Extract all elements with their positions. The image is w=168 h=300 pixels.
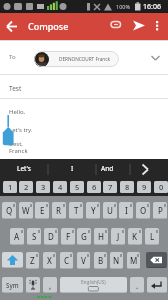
button[interactable]: L	[145, 228, 159, 245]
button[interactable]	[149, 14, 165, 36]
button[interactable]: H	[94, 228, 108, 245]
staticText: 100%	[116, 3, 131, 10]
button[interactable]: I	[48, 159, 96, 178]
staticText: 1	[8, 182, 13, 192]
staticText: DERNONCOURT Franck	[59, 56, 110, 62]
staticText: Sym	[6, 281, 19, 289]
staticText: 16:06	[143, 2, 161, 12]
staticText: L	[150, 231, 155, 242]
staticText: 4	[58, 182, 63, 192]
staticText: Test	[9, 84, 22, 93]
button[interactable]	[127, 14, 149, 36]
button[interactable]: A	[10, 228, 24, 245]
staticText: E	[40, 205, 45, 216]
staticText: Hello,	[9, 108, 26, 116]
button[interactable]: .	[130, 277, 144, 293]
button[interactable]: Z	[26, 252, 39, 269]
staticText: K	[132, 231, 138, 242]
staticText: And	[101, 164, 114, 173]
button[interactable]: E	[35, 202, 49, 219]
button[interactable]: 2	[19, 181, 33, 193]
staticText: I	[125, 205, 128, 216]
staticText: S	[32, 231, 37, 242]
button[interactable]: S	[27, 228, 41, 245]
button[interactable]: 8	[120, 181, 134, 193]
staticText: Y	[91, 205, 96, 216]
button[interactable]: 3	[36, 181, 50, 193]
button[interactable]: 0	[154, 181, 168, 193]
button[interactable]: Sym	[2, 277, 23, 293]
staticText: J	[117, 231, 120, 242]
button[interactable]	[146, 48, 166, 68]
button[interactable]: R	[52, 202, 66, 219]
staticText: .	[136, 280, 139, 291]
staticText: A	[14, 231, 20, 242]
button[interactable]: 1	[3, 181, 17, 193]
button[interactable]: W	[19, 202, 33, 219]
button[interactable]: K	[128, 228, 142, 245]
button[interactable]	[147, 277, 167, 293]
button[interactable]: D	[44, 228, 58, 245]
staticText: X	[47, 255, 52, 266]
staticText: 3	[41, 182, 46, 192]
staticText: 8	[125, 182, 130, 192]
button[interactable]: 7	[103, 181, 117, 193]
staticText: G	[81, 231, 87, 242]
staticText: Z	[30, 255, 35, 266]
staticText: 5	[75, 182, 80, 192]
staticText: I	[71, 164, 74, 173]
button[interactable]: Y	[86, 202, 100, 219]
staticText: O	[140, 205, 147, 216]
staticText: Let's try.	[9, 126, 33, 134]
button[interactable]: English(US)	[60, 277, 127, 293]
staticText: To	[9, 53, 16, 61]
staticText: B	[98, 255, 104, 266]
staticText: N	[113, 255, 120, 266]
button[interactable]: N	[110, 252, 123, 269]
staticText: 0	[159, 182, 164, 192]
staticText: M	[130, 255, 138, 266]
staticText: T	[74, 205, 79, 216]
button[interactable]: 5	[70, 181, 84, 193]
button[interactable]: I	[119, 202, 133, 219]
staticText: Q	[6, 205, 13, 216]
button[interactable]: J	[111, 228, 125, 245]
button[interactable]: 9	[137, 181, 151, 193]
button[interactable]: F	[61, 228, 75, 245]
button[interactable]: 6	[87, 181, 101, 193]
button[interactable]	[146, 252, 167, 268]
staticText: H	[98, 231, 104, 242]
button[interactable]: G	[77, 228, 91, 245]
staticText: Let's	[17, 164, 31, 173]
staticText: ,	[49, 280, 52, 291]
button[interactable]	[2, 252, 23, 268]
staticText: 6	[92, 182, 97, 192]
button[interactable]	[104, 14, 126, 36]
button[interactable]: P	[153, 202, 167, 219]
button[interactable]: ,	[43, 277, 57, 293]
staticText: P	[158, 205, 163, 216]
staticText: 9	[142, 182, 147, 192]
button[interactable]: U	[103, 202, 117, 219]
button[interactable]: T	[69, 202, 83, 219]
button[interactable]: M	[127, 252, 140, 269]
button[interactable]: DERNONCOURT Franck	[34, 51, 119, 67]
button[interactable]: C	[60, 252, 73, 269]
staticText: U	[107, 205, 113, 216]
staticText: 7	[108, 182, 113, 192]
button[interactable]	[26, 277, 40, 293]
button[interactable]	[2, 15, 24, 37]
button[interactable]: Q	[2, 202, 16, 219]
staticText: D	[48, 231, 54, 242]
button[interactable]: 4	[53, 181, 67, 193]
button[interactable]: And	[96, 159, 118, 178]
button[interactable]: B	[94, 252, 107, 269]
staticText: C	[64, 255, 70, 266]
staticText: 2	[24, 182, 29, 192]
staticText: Franck	[9, 147, 28, 155]
button[interactable]: O	[136, 202, 150, 219]
button[interactable]: X	[43, 252, 56, 269]
button[interactable]: Let's	[0, 159, 48, 178]
button[interactable]: V	[77, 252, 90, 269]
staticText: Best,	[9, 140, 23, 148]
